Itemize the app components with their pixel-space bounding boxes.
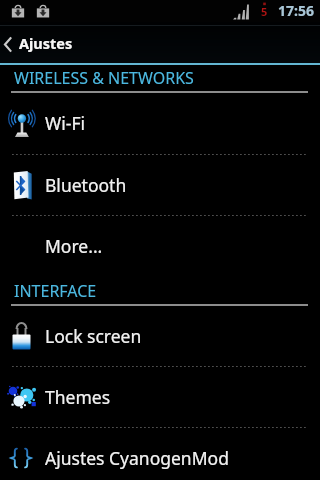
staticText: More...	[45, 234, 103, 258]
button[interactable]: Ajustes CyanogenMod	[0, 427, 320, 480]
button[interactable]: Wi-Fi	[0, 92, 320, 154]
staticText: Themes	[45, 385, 111, 409]
button[interactable]: Bluetooth	[0, 154, 320, 215]
button[interactable]: Back	[0, 22, 320, 64]
other: Back	[4, 37, 11, 52]
button[interactable]: Themes	[0, 366, 320, 427]
staticText: Bluetooth	[45, 173, 127, 197]
staticText: Wi-Fi	[45, 111, 86, 135]
staticText: 17:56	[278, 1, 314, 20]
staticText: Ajustes CyanogenMod	[45, 446, 229, 470]
staticText: 5	[261, 4, 268, 19]
button[interactable]: Lock screen	[0, 305, 320, 366]
staticText: Lock screen	[45, 324, 142, 348]
button[interactable]: More...	[0, 215, 320, 277]
staticText: WIRELESS & NETWORKS	[14, 67, 194, 89]
staticText: INTERFACE	[14, 280, 97, 302]
staticText: Ajustes	[19, 33, 73, 53]
